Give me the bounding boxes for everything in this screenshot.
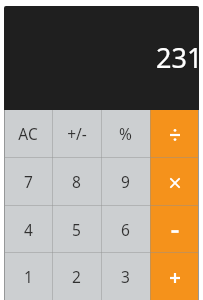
staticText: 4	[24, 219, 33, 240]
button[interactable]: 6	[101, 206, 150, 254]
staticText: 9	[121, 171, 130, 192]
staticText: 5	[72, 219, 81, 240]
staticText: 7	[24, 171, 33, 192]
button[interactable]: 3	[101, 254, 150, 300]
staticText: AC	[18, 123, 38, 144]
button[interactable]: 1	[4, 254, 52, 300]
button[interactable]: 2	[52, 254, 101, 300]
button[interactable]: Subtract	[150, 206, 199, 254]
button[interactable]: 4	[4, 206, 52, 254]
staticText: +/-	[67, 123, 87, 144]
staticText: %	[119, 123, 132, 144]
button[interactable]: 9	[101, 158, 150, 206]
button[interactable]: Divide	[150, 110, 199, 158]
staticText: 2	[72, 266, 81, 287]
button[interactable]: %	[101, 110, 150, 158]
staticText: 6	[121, 219, 130, 240]
button[interactable]: 5	[52, 206, 101, 254]
button[interactable]: 8	[52, 158, 101, 206]
staticText: 1	[24, 266, 33, 287]
staticText: 8	[72, 171, 81, 192]
button[interactable]: Add	[150, 254, 199, 300]
button[interactable]: +/-	[52, 110, 101, 158]
button[interactable]: 7	[4, 158, 52, 206]
staticText: 3	[121, 266, 130, 287]
button[interactable]: Multiply	[150, 158, 199, 206]
button[interactable]: AC	[4, 110, 52, 158]
staticText: 231	[156, 39, 199, 76]
